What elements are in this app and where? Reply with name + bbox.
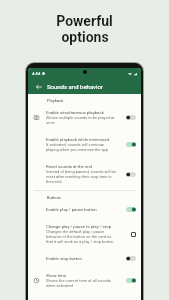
staticText: Show time bbox=[46, 273, 67, 278]
staticText: Playback bbox=[47, 98, 64, 103]
button[interactable]: Enable playback while minimized bbox=[28, 131, 141, 158]
staticText: Buttons bbox=[47, 195, 61, 200]
button[interactable]: Show time bbox=[28, 267, 141, 294]
staticText: 4:54 bbox=[32, 71, 41, 76]
staticText: Enable stop button bbox=[46, 256, 82, 261]
staticText: Shows the current time of all sounds whe… bbox=[46, 278, 116, 288]
staticText: Allows multiple sounds to be played at o… bbox=[46, 115, 116, 125]
button[interactable]: Enable stop button bbox=[28, 250, 141, 267]
button[interactable]: On bbox=[126, 142, 136, 147]
button[interactable]: Back bbox=[33, 81, 44, 92]
staticText: Enable play / pause button bbox=[46, 207, 97, 212]
staticText: Reset sounds at the end bbox=[46, 164, 93, 169]
button[interactable]: Enable simultaneous playback bbox=[28, 104, 141, 131]
staticText: Enable simultaneous playback bbox=[46, 110, 104, 115]
button[interactable]: Off bbox=[126, 256, 136, 261]
staticText: options bbox=[61, 29, 109, 45]
staticText: Change play / pause to play / stop bbox=[46, 224, 112, 229]
staticText: Enable playback while minimized bbox=[46, 137, 109, 142]
staticText: Instead of being paused, sounds will be … bbox=[46, 169, 116, 184]
button[interactable]: Enable play / pause button bbox=[28, 201, 141, 218]
button[interactable]: Off bbox=[126, 115, 136, 120]
button[interactable]: Change play / pause to play / stop bbox=[28, 218, 141, 250]
button[interactable]: On bbox=[126, 278, 136, 283]
staticText: If activated, sounds will continue playi… bbox=[46, 142, 116, 152]
button[interactable]: Off bbox=[126, 172, 136, 177]
staticText: Changes the default play / pause behavio… bbox=[46, 229, 116, 244]
staticText: Sounds and behavior bbox=[47, 83, 103, 90]
button[interactable]: Checkbox bbox=[130, 232, 136, 237]
staticText: Powerful bbox=[56, 13, 113, 29]
button[interactable]: Reset sounds at the end bbox=[28, 158, 141, 190]
button[interactable]: On bbox=[126, 207, 136, 212]
